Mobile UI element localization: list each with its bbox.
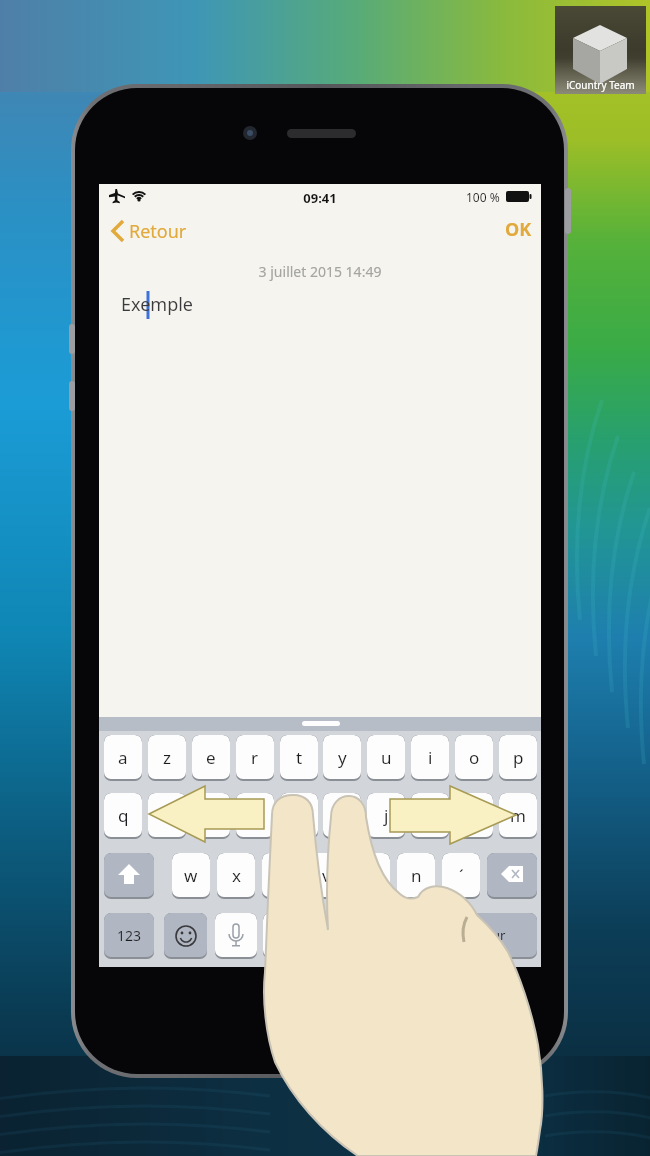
staticText: s — [163, 804, 172, 827]
staticText: j — [384, 804, 389, 827]
button[interactable]: t — [280, 735, 318, 781]
button[interactable] — [215, 913, 257, 959]
button[interactable]: 123 — [104, 913, 154, 959]
staticText: y — [338, 746, 347, 769]
staticText: r — [251, 746, 259, 769]
button[interactable]: d — [192, 793, 230, 839]
staticText: o — [469, 746, 480, 769]
staticText: 123 — [117, 926, 142, 945]
button[interactable]: e — [192, 735, 230, 781]
staticText: OK — [505, 217, 532, 242]
button[interactable]: h — [323, 793, 361, 839]
staticText: a — [118, 746, 128, 769]
button[interactable] — [487, 853, 537, 899]
button[interactable]: u — [367, 735, 405, 781]
staticText: m — [510, 804, 526, 827]
button[interactable]: a — [104, 735, 142, 781]
staticText: i — [428, 746, 433, 769]
staticText: t — [296, 746, 303, 769]
button[interactable]: o — [455, 735, 493, 781]
staticText: 100 % — [466, 189, 500, 205]
staticText: n — [411, 864, 422, 887]
staticText: u — [381, 746, 392, 769]
staticText: 3 juillet 2015 14:49 — [99, 262, 541, 281]
staticText: p — [513, 746, 524, 769]
button[interactable]: c — [262, 853, 300, 899]
staticText: Exemple — [121, 292, 194, 317]
button[interactable]: j — [367, 793, 405, 839]
button[interactable]: v — [307, 853, 345, 899]
button[interactable]: b — [352, 853, 390, 899]
staticText: x — [232, 864, 241, 887]
button[interactable]: k — [411, 793, 449, 839]
button[interactable]: r — [236, 735, 274, 781]
button[interactable]: f — [236, 793, 274, 839]
button[interactable]: q — [104, 793, 142, 839]
button[interactable] — [263, 913, 450, 959]
staticText: 09:41 — [99, 189, 541, 207]
staticText: Retour — [129, 219, 187, 244]
button[interactable]: OK — [505, 217, 545, 245]
button[interactable]: s — [148, 793, 186, 839]
staticText: retour — [467, 926, 506, 944]
staticText: ´ — [459, 864, 464, 887]
button[interactable]: retour — [456, 913, 537, 959]
button[interactable]: p — [499, 735, 537, 781]
button[interactable]: iCountry Team — [555, 6, 646, 94]
button[interactable] — [104, 853, 154, 899]
button[interactable]: Retour — [109, 217, 201, 245]
button[interactable] — [164, 913, 207, 959]
button[interactable]: ´ — [442, 853, 480, 899]
staticText: w — [184, 864, 198, 887]
staticText: z — [163, 746, 171, 769]
button[interactable]: l — [455, 793, 493, 839]
staticText: e — [206, 746, 216, 769]
button[interactable]: y — [323, 735, 361, 781]
button[interactable]: x — [217, 853, 255, 899]
staticText: iCountry Team — [555, 78, 646, 92]
button[interactable]: g — [280, 793, 318, 839]
button[interactable]: i — [411, 735, 449, 781]
button[interactable]: n — [397, 853, 435, 899]
staticText: v — [322, 864, 331, 887]
button[interactable]: m — [499, 793, 537, 839]
staticText: q — [118, 804, 129, 827]
button[interactable]: z — [148, 735, 186, 781]
button[interactable]: w — [172, 853, 210, 899]
